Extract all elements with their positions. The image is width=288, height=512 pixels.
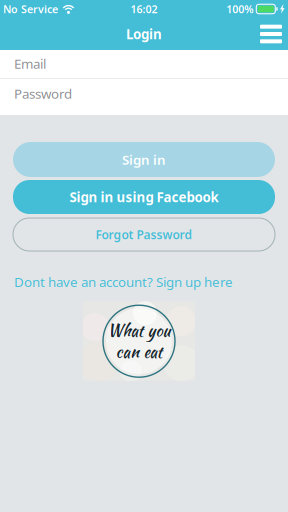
staticText: 16:02 <box>130 2 157 16</box>
button[interactable]: Menu <box>248 21 288 47</box>
button[interactable]: Sign in <box>13 142 275 177</box>
staticText: can eat <box>115 340 162 363</box>
button[interactable]: Forgot Password <box>13 218 275 251</box>
button[interactable]: Sign in using Facebook <box>13 180 275 214</box>
staticText: What you <box>107 319 170 342</box>
staticText: Forgot Password <box>95 226 192 242</box>
staticText: No Service <box>3 2 58 16</box>
staticText: Dont have an account? Sign up here <box>14 273 233 291</box>
staticText: Email <box>14 55 46 72</box>
staticText: Password <box>14 85 72 102</box>
staticText: 100% <box>226 2 253 16</box>
staticText: Sign in using Facebook <box>69 188 218 206</box>
button[interactable]: Dont have an account? Sign up here <box>14 273 233 291</box>
staticText: Sign in <box>122 151 166 168</box>
staticText: Login <box>126 25 162 43</box>
